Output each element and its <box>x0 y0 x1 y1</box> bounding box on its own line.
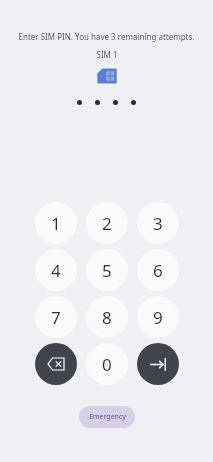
button[interactable]: 8 <box>86 296 128 338</box>
button[interactable]: Enter <box>137 343 179 385</box>
staticText: Emergency <box>89 412 126 422</box>
button[interactable]: 6 <box>137 249 179 291</box>
staticText: 4 <box>51 259 61 282</box>
button[interactable]: 0 <box>86 343 128 385</box>
staticText: 8 <box>102 306 112 329</box>
button[interactable]: 2 <box>86 202 128 244</box>
staticText: Enter SIM PIN. You have 3 remaining atte… <box>12 31 201 42</box>
staticText: 7 <box>51 306 61 329</box>
button[interactable]: 7 <box>35 296 77 338</box>
button[interactable]: Backspace <box>35 343 77 385</box>
button[interactable]: 4 <box>35 249 77 291</box>
button[interactable]: 5 <box>86 249 128 291</box>
staticText: 5 <box>102 259 112 282</box>
staticText: 6 <box>153 259 163 282</box>
button[interactable]: 1 <box>35 202 77 244</box>
staticText: 2 <box>102 212 112 235</box>
staticText: 3 <box>153 212 163 235</box>
staticText: 0 <box>102 353 112 376</box>
button[interactable]: 3 <box>137 202 179 244</box>
staticText: 1 <box>51 212 61 235</box>
staticText: SIM 1 <box>96 49 118 60</box>
staticText: 9 <box>153 306 163 329</box>
button[interactable]: Emergency <box>79 406 135 428</box>
button[interactable]: 9 <box>137 296 179 338</box>
